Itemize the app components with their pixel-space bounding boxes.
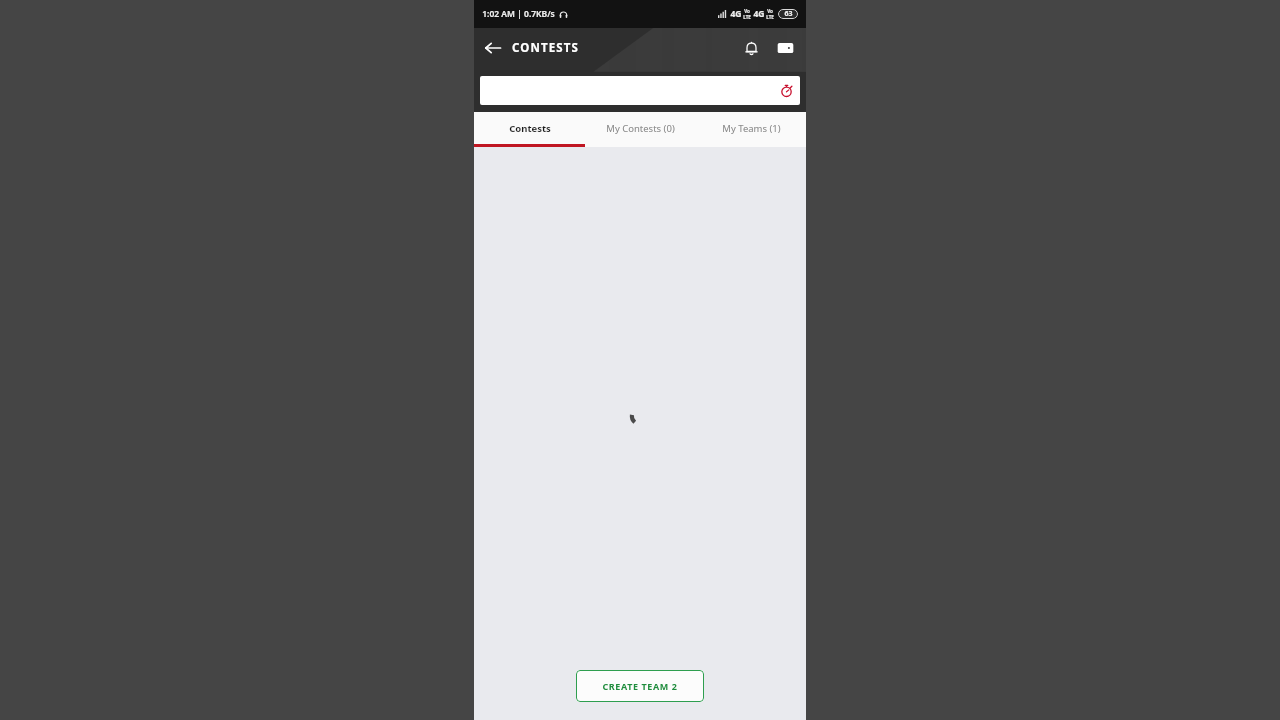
staticText: LTE xyxy=(766,14,774,20)
staticText: My Contests (0) xyxy=(606,122,675,135)
staticText: LTE xyxy=(743,14,751,20)
staticText: 4G xyxy=(753,8,765,20)
button[interactable]: Notifications xyxy=(734,31,768,65)
staticText: 1:02 AM | 0.7KB/s xyxy=(482,8,555,20)
staticText: CREATE TEAM 2 xyxy=(602,680,678,692)
button[interactable]: Back xyxy=(474,29,512,67)
staticText: Vo xyxy=(744,8,750,14)
staticText: Contests xyxy=(509,122,551,135)
staticText: 63 xyxy=(784,9,793,19)
button[interactable]: My Contests (0) xyxy=(585,112,696,144)
button[interactable]: Contests xyxy=(474,112,585,144)
button[interactable]: Wallet xyxy=(768,31,802,65)
staticText: Vo xyxy=(767,8,773,14)
staticText: My Teams (1) xyxy=(722,122,781,135)
button[interactable]: My Teams (1) xyxy=(696,112,806,144)
button[interactable] xyxy=(480,76,800,105)
staticText: CONTESTS xyxy=(512,40,579,56)
button[interactable]: CREATE TEAM 2 xyxy=(576,670,704,702)
staticText: 4G xyxy=(730,8,742,20)
